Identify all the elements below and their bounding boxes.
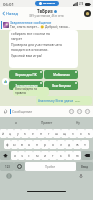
staticText: 123 [5, 165, 10, 169]
button[interactable]: Версия для ПК [9, 70, 43, 79]
button[interactable]: п [33, 140, 41, 149]
button[interactable]: г [45, 129, 53, 138]
button[interactable]: Attach [3, 109, 8, 114]
staticText: 06:01 [3, 1, 14, 7]
button[interactable]: б [65, 151, 73, 160]
button[interactable]: о [49, 140, 57, 149]
button[interactable]: и [41, 151, 49, 160]
button[interactable]: м [33, 151, 41, 160]
button[interactable]: ь [57, 151, 65, 160]
staticText: п [36, 142, 39, 147]
button[interactable]: Пробел [25, 162, 76, 171]
button[interactable]: Telegram notification [35, 1, 59, 6]
staticText: ж [76, 142, 79, 147]
button[interactable]: собирать все ссылки на [9, 30, 78, 68]
button[interactable]: ъ [85, 129, 93, 138]
staticText: г [48, 131, 50, 136]
staticText: м [36, 153, 39, 158]
button[interactable]: Вам бонусом [44, 81, 78, 90]
staticText: д [68, 142, 71, 147]
staticText: е [32, 131, 34, 136]
button[interactable]: з [69, 129, 77, 138]
staticText: я [14, 153, 16, 158]
button[interactable]: р [41, 140, 49, 149]
button[interactable]: ж [73, 140, 81, 149]
button[interactable]: #заключку Всем удачи [36, 96, 92, 105]
button[interactable]: Sticker [77, 109, 82, 114]
staticText: в [21, 142, 23, 147]
button[interactable]: л [57, 140, 65, 149]
button[interactable]: ш [53, 129, 61, 138]
staticText: Удачной вам игры! [11, 53, 43, 58]
staticText: ы [13, 142, 16, 147]
button[interactable]: Ну [62, 117, 93, 128]
staticText: Вам бонусом [52, 84, 71, 88]
staticText: к [24, 131, 26, 136]
staticText: и [44, 153, 47, 158]
staticText: л [60, 142, 62, 147]
button[interactable]: За приветствие [9, 81, 43, 90]
staticText: ь [60, 153, 62, 158]
staticText: з [72, 131, 74, 136]
staticText: ф [6, 142, 9, 147]
button[interactable]: Shift [0, 151, 11, 160]
staticText: Так, опять запрет... 🙂 Добрый, такая... [10, 25, 71, 29]
staticText: с [28, 153, 30, 158]
button[interactable]: т [49, 151, 57, 160]
staticText: Мобильная [53, 73, 70, 77]
button[interactable]: 123 [0, 162, 14, 171]
button[interactable]: Backspace [81, 151, 93, 160]
button[interactable]: д [65, 140, 73, 149]
staticText: собирать все ссылки на [11, 31, 50, 36]
button[interactable]: Привет [31, 117, 62, 128]
staticText: правило [15, 91, 27, 95]
staticText: 389 участников, 46 в сети [29, 14, 64, 18]
staticText: х [80, 131, 82, 136]
button[interactable]: я [11, 151, 18, 160]
staticText: ч [21, 153, 23, 158]
button[interactable]: Ввод [76, 162, 93, 171]
button[interactable]: а [25, 140, 33, 149]
button[interactable]: Мобильная [44, 70, 78, 79]
button[interactable]: Voice input [78, 173, 84, 179]
staticText: б [68, 153, 71, 158]
staticText: Всем зайдено на активном [15, 87, 47, 91]
button[interactable]: э [81, 140, 89, 149]
button[interactable]: н [37, 129, 45, 138]
button[interactable]: я [0, 117, 31, 128]
staticText: н [40, 131, 43, 136]
button[interactable]: Emoji [69, 109, 74, 114]
button[interactable]: Закрепленное сообщение [0, 19, 93, 30]
button[interactable]: ю [73, 151, 81, 160]
button[interactable]: Group avatar [84, 10, 91, 17]
button[interactable]: ц [7, 129, 14, 138]
staticText: Проверка для участников чата [11, 42, 62, 47]
staticText: ъ [88, 131, 91, 136]
staticText: Ввод [81, 165, 89, 169]
button[interactable]: Всем зайдено на активном [13, 87, 49, 96]
staticText: щ [63, 131, 67, 136]
button[interactable]: й [0, 129, 7, 138]
staticText: #заключку Всем удачи [38, 99, 74, 103]
button[interactable]: е [29, 129, 37, 138]
button[interactable]: Change language [6, 173, 12, 179]
button[interactable]: щ [61, 129, 69, 138]
staticText: Закрепленное сообщение [10, 21, 52, 25]
button[interactable]: в [18, 140, 25, 149]
button[interactable]: Emoji [14, 162, 25, 171]
staticText: TELEGRAM [43, 2, 56, 5]
button[interactable]: х [77, 129, 85, 138]
button[interactable]: ф [4, 140, 11, 149]
button[interactable]: ч [18, 151, 25, 160]
staticText: р [44, 142, 47, 147]
staticText: Версия для ПК [15, 73, 37, 77]
button[interactable]: к [21, 129, 29, 138]
button[interactable]: Back [1, 11, 18, 16]
staticText: ш [55, 131, 59, 136]
button[interactable]: с [25, 151, 33, 160]
button[interactable]: ы [11, 140, 18, 149]
button[interactable]: у [14, 129, 21, 138]
staticText: й [2, 131, 5, 136]
button[interactable]: Voice message [85, 109, 90, 114]
staticText: э [84, 142, 86, 147]
